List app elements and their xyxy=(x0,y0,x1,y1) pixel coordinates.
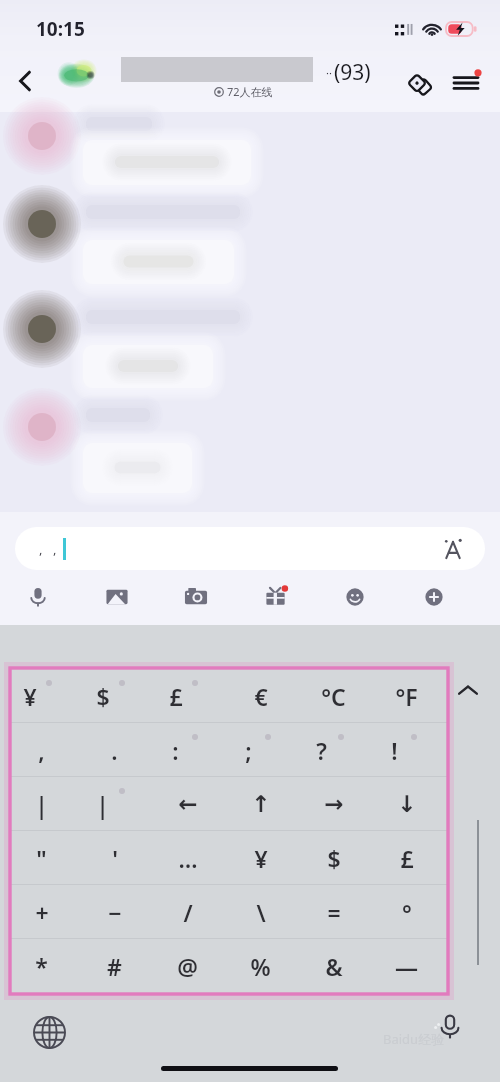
button[interactable]: / xyxy=(156,885,229,939)
button[interactable]: £ xyxy=(156,669,229,723)
button[interactable]: + xyxy=(10,885,83,939)
button[interactable]: * xyxy=(10,939,83,993)
staticText: ? xyxy=(316,735,327,766)
button[interactable]: Message xyxy=(14,304,264,394)
button[interactable]: ° xyxy=(375,885,448,939)
button[interactable]: ↑ xyxy=(229,777,302,831)
staticText: @ xyxy=(177,951,198,982)
button[interactable]: … xyxy=(156,831,229,885)
staticText: + xyxy=(35,897,49,928)
staticText: 10:15 xyxy=(36,16,85,42)
button[interactable]: @ xyxy=(156,939,229,993)
button[interactable]: ' xyxy=(83,831,156,885)
button[interactable]: Message xyxy=(14,111,264,191)
button[interactable]: ¥ xyxy=(229,831,302,885)
button[interactable]: & xyxy=(302,939,375,993)
button[interactable]: °C xyxy=(302,669,375,723)
button[interactable]: = xyxy=(302,885,375,939)
staticText: & xyxy=(325,951,343,982)
staticText: ↓ xyxy=(397,791,417,818)
staticText: = xyxy=(327,897,341,928)
staticText: °F xyxy=(395,681,418,712)
button[interactable]: | xyxy=(10,777,83,831)
button[interactable]: Text style xyxy=(437,533,469,565)
button[interactable]: \ xyxy=(229,885,302,939)
staticText: * xyxy=(35,951,48,982)
staticText: ← xyxy=(178,791,198,818)
button[interactable]: € xyxy=(229,669,302,723)
button[interactable]: Gift xyxy=(400,64,440,104)
button[interactable]: °F xyxy=(375,669,448,723)
button[interactable]: Photo xyxy=(102,582,132,612)
staticText: ¥ xyxy=(254,843,268,874)
button[interactable]: . xyxy=(83,723,156,777)
button[interactable]: — xyxy=(375,939,448,993)
staticText: ° xyxy=(402,897,412,928)
staticText: Baidu经验 xyxy=(383,1030,445,1048)
button[interactable]: Voice xyxy=(23,582,53,612)
staticText: # xyxy=(107,951,122,982)
button[interactable]: Camera xyxy=(181,582,211,612)
staticText: : xyxy=(172,735,179,766)
button[interactable]: Switch language xyxy=(29,1012,69,1052)
staticText: £ xyxy=(400,843,414,874)
button[interactable]: % xyxy=(229,939,302,993)
staticText: — xyxy=(395,951,418,982)
button[interactable]: Gift xyxy=(261,582,291,612)
staticText: % xyxy=(250,951,271,982)
staticText: 72人在线 xyxy=(227,84,273,99)
button[interactable]: | xyxy=(83,777,156,831)
button[interactable]: More xyxy=(419,582,449,612)
button[interactable]: ← xyxy=(156,777,229,831)
button[interactable]: , xyxy=(15,527,485,570)
button[interactable]: Menu xyxy=(447,64,485,102)
staticText: \ xyxy=(256,897,266,928)
staticText: / xyxy=(183,897,193,928)
button[interactable]: Message xyxy=(14,199,264,290)
button[interactable]: Back xyxy=(4,60,46,102)
staticText: , xyxy=(38,735,45,766)
button[interactable]: ↓ xyxy=(375,777,448,831)
staticText: ' xyxy=(112,843,118,874)
staticText: | xyxy=(35,789,48,820)
staticText: ! xyxy=(391,735,398,766)
staticText: ; xyxy=(245,735,252,766)
button[interactable]: : xyxy=(156,723,229,777)
staticText: " xyxy=(36,843,47,874)
button[interactable]: Voice input xyxy=(431,1008,469,1046)
staticText: $ xyxy=(96,681,110,712)
button[interactable]: → xyxy=(302,777,375,831)
button[interactable]: ! xyxy=(375,723,448,777)
staticText: , xyxy=(39,540,43,558)
staticText: ·· xyxy=(326,65,332,80)
button[interactable]: $ xyxy=(83,669,156,723)
button[interactable]: ; xyxy=(229,723,302,777)
staticText: £ xyxy=(169,681,183,712)
button[interactable]: $ xyxy=(302,831,375,885)
staticText: $ xyxy=(327,843,341,874)
staticText: … xyxy=(178,843,198,874)
button[interactable]: ¥ xyxy=(10,669,83,723)
button[interactable]: − xyxy=(83,885,156,939)
button[interactable]: " xyxy=(10,831,83,885)
staticText: (93) xyxy=(334,58,371,87)
button[interactable]: Collapse xyxy=(452,675,484,707)
button[interactable]: , xyxy=(10,723,83,777)
button[interactable]: Emoji xyxy=(340,582,370,612)
button[interactable]: Message xyxy=(14,402,264,499)
staticText: ¥ xyxy=(23,681,37,712)
staticText: °C xyxy=(321,681,346,712)
button[interactable]: ? xyxy=(302,723,375,777)
staticText: € xyxy=(254,681,268,712)
staticText: | xyxy=(96,789,109,820)
staticText: . xyxy=(111,735,118,766)
staticText: → xyxy=(324,791,344,818)
staticText: − xyxy=(108,897,122,928)
staticText: , xyxy=(53,540,57,558)
button[interactable]: # xyxy=(83,939,156,993)
staticText: ↑ xyxy=(251,791,271,818)
button[interactable]: £ xyxy=(375,831,448,885)
